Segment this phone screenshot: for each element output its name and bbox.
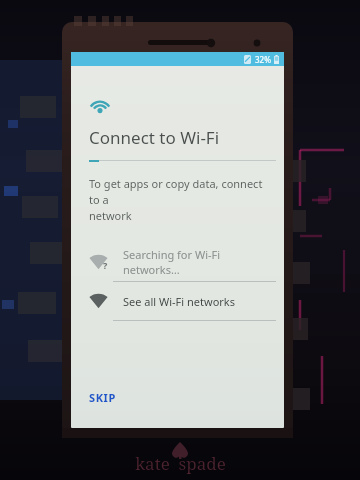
staticText: Connect to Wi-Fi (89, 126, 220, 149)
staticText: 32% (255, 54, 271, 65)
staticText: See all Wi-Fi networks (123, 294, 235, 309)
button[interactable]: See all Wi-Fi networks (71, 282, 284, 320)
staticText: SKIP (89, 390, 116, 405)
staticText: Searching for Wi-Fi networks… (123, 247, 274, 277)
staticText: kate spade (135, 452, 226, 475)
button[interactable]: ? (71, 243, 284, 281)
staticText: To get apps or copy data, connect to a n… (89, 176, 272, 223)
staticText: ? (103, 259, 108, 271)
button[interactable]: SKIP (83, 385, 122, 410)
